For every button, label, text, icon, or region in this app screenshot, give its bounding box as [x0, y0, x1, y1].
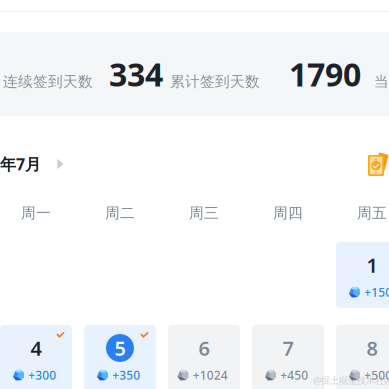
staticText: 连续签到天数: [3, 72, 93, 90]
button[interactable]: 4: [0, 325, 72, 389]
staticText: 周五: [357, 204, 387, 222]
staticText: 当: [374, 72, 389, 90]
staticText: 累计签到天数: [170, 72, 260, 90]
staticText: 334: [109, 53, 163, 95]
staticText: @掘土掘金技术社区: [313, 374, 389, 386]
button[interactable]: 5: [84, 325, 156, 389]
staticText: 年7月: [0, 153, 41, 175]
staticText: 周二: [105, 204, 135, 222]
button[interactable]: 8: [336, 325, 389, 389]
staticText: 周三: [189, 204, 219, 222]
staticText: 1790: [289, 53, 361, 95]
staticText: 周一: [21, 204, 51, 222]
button[interactable]: 年7月: [0, 152, 64, 176]
staticText: +150: [364, 284, 389, 300]
button[interactable]: 签到卡: [368, 152, 389, 176]
staticText: +350: [112, 367, 140, 383]
staticText: +500: [364, 367, 389, 383]
staticText: 5: [114, 335, 125, 361]
staticText: +1024: [193, 367, 228, 383]
button[interactable]: 1: [336, 242, 389, 308]
button[interactable]: 6: [168, 325, 240, 389]
staticText: 6: [198, 335, 209, 361]
staticText: 7: [282, 335, 293, 361]
staticText: 周四: [273, 204, 303, 222]
staticText: +300: [28, 367, 56, 383]
staticText: 1: [366, 252, 377, 278]
staticText: +450: [280, 367, 308, 383]
staticText: 4: [30, 335, 41, 361]
staticText: 8: [366, 335, 377, 361]
button[interactable]: 7: [252, 325, 324, 389]
